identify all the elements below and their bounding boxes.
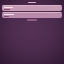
button[interactable]: More actions [27,19,37,21]
button[interactable]: Secondary item [2,12,62,18]
button[interactable]: Primary item [2,5,62,11]
